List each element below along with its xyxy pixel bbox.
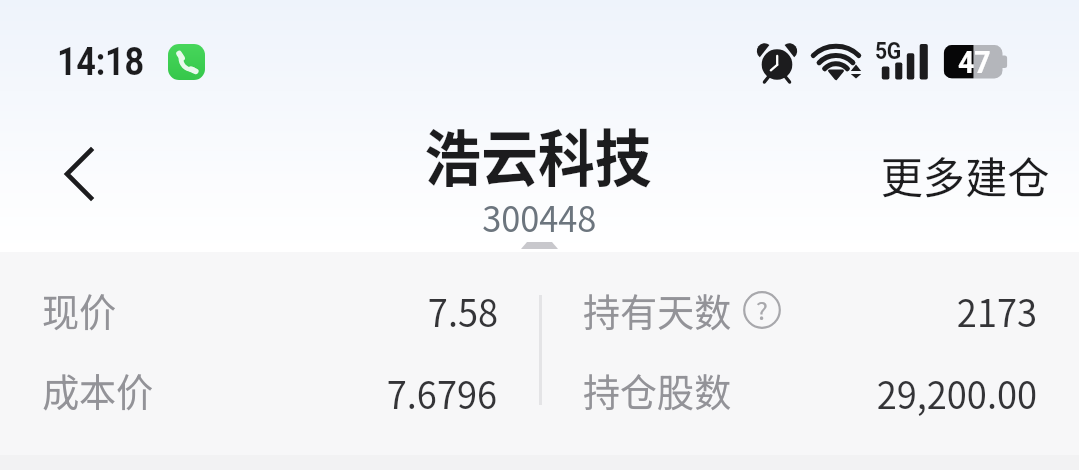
staticText: 成本价 [42,362,154,418]
button[interactable] [549,266,1069,338]
staticText: 7.6796 [117,365,497,420]
staticText: 7.58 [118,283,498,338]
staticText: 2173 [657,283,1037,338]
button[interactable]: Back [47,132,117,218]
button[interactable]: 更多建仓 [867,139,1063,209]
button[interactable]: What is holding days? [743,291,781,329]
staticText: 持仓股数 [583,362,732,418]
staticText: 浩云科技 [425,109,652,199]
staticText: 持有天数 [583,282,732,338]
staticText: 现价 [42,282,117,338]
button[interactable] [10,266,530,338]
staticText: 47 [958,44,991,80]
button[interactable] [549,346,1069,418]
staticText: 更多建仓 [880,143,1049,207]
button[interactable] [10,346,530,418]
staticText: 14:18 [57,40,144,85]
staticText: ? [756,291,768,327]
button[interactable]: 浩云科技 [398,109,678,239]
staticText: 5G [875,38,902,65]
staticText: 300448 [482,191,597,242]
staticText: 29,200.00 [657,365,1037,420]
